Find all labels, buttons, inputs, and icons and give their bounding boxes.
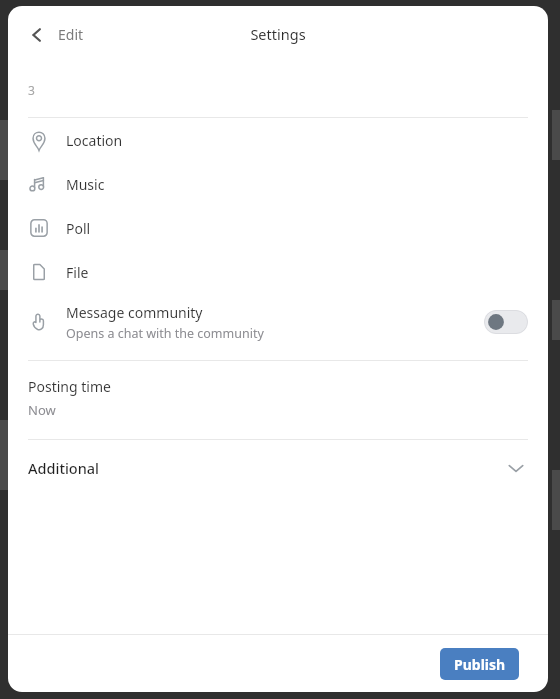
staticText: Opens a chat with the community xyxy=(66,325,264,342)
staticText: Settings xyxy=(250,24,306,44)
staticText: Now xyxy=(28,401,56,419)
button[interactable]: File xyxy=(8,250,548,294)
button[interactable]: Music xyxy=(8,162,548,206)
button[interactable]: Additional xyxy=(8,440,548,496)
button[interactable]: Publish xyxy=(440,648,519,680)
staticText: 3 xyxy=(28,82,35,98)
button[interactable]: Expand additional xyxy=(504,456,528,480)
staticText: Location xyxy=(66,131,123,150)
button[interactable]: Message community toggle xyxy=(484,310,528,334)
staticText: File xyxy=(66,263,89,282)
button[interactable]: Poll xyxy=(8,206,548,250)
button[interactable]: Message community xyxy=(8,294,548,350)
button[interactable]: Location xyxy=(8,118,548,162)
staticText: Message community xyxy=(66,303,203,322)
button[interactable]: Posting time xyxy=(8,361,548,433)
staticText: Poll xyxy=(66,219,91,238)
staticText: Music xyxy=(66,175,105,194)
staticText: Additional xyxy=(28,458,504,478)
button[interactable]: Edit xyxy=(22,19,90,50)
staticText: Posting time xyxy=(28,377,111,396)
staticText: Edit xyxy=(58,25,84,44)
staticText: Publish xyxy=(454,655,506,674)
